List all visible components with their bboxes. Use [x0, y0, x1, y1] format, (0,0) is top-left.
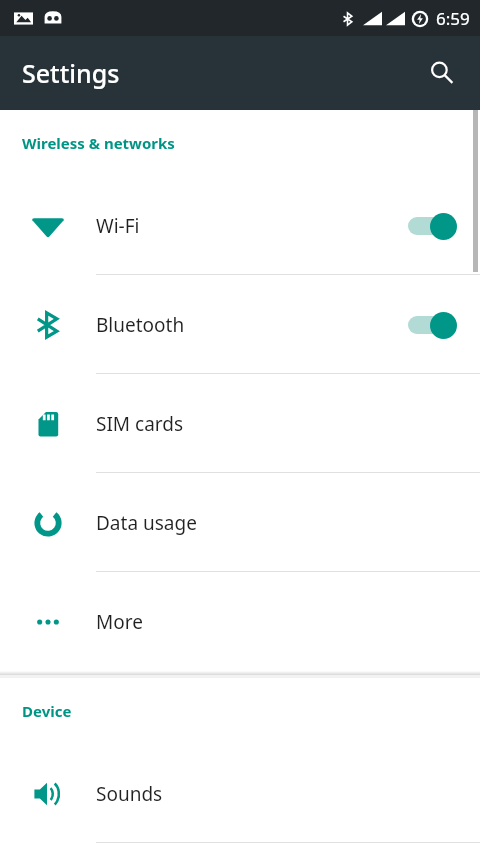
staticText: Data usage — [96, 510, 480, 536]
button[interactable]: Data usage — [0, 473, 480, 572]
staticText: Settings — [22, 56, 120, 90]
staticText: SIM cards — [96, 411, 480, 437]
staticText: Wi-Fi — [96, 213, 406, 239]
staticText: Bluetooth — [96, 312, 406, 338]
button[interactable]: Toggle — [406, 310, 458, 340]
button[interactable]: Wi-Fi — [0, 176, 480, 275]
staticText: Device — [22, 701, 72, 721]
staticText: More — [96, 609, 480, 635]
button[interactable]: More — [0, 572, 480, 671]
button[interactable]: SIM cards — [0, 374, 480, 473]
staticText: Wireless & networks — [22, 133, 175, 153]
button[interactable]: Search — [418, 49, 466, 97]
button[interactable]: Toggle — [406, 211, 458, 241]
button[interactable]: Sounds — [0, 744, 480, 843]
staticText: 6:59 — [436, 7, 470, 30]
button[interactable]: Bluetooth — [0, 275, 480, 374]
staticText: Sounds — [96, 781, 480, 807]
